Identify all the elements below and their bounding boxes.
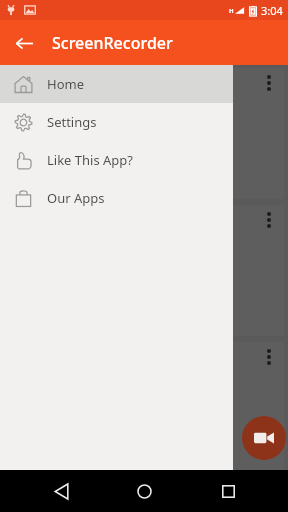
staticText: Settings — [47, 113, 97, 131]
button[interactable]: Home — [0, 65, 233, 103]
staticText: H — [229, 7, 234, 15]
staticText: Like This App? — [47, 151, 133, 169]
button[interactable]: Our Apps — [0, 179, 233, 217]
button[interactable]: Like This App? — [0, 141, 233, 179]
button[interactable]: Back — [6, 25, 42, 61]
button[interactable]: More options — [256, 207, 282, 233]
button[interactable]: 2018-09-2 — [6, 68, 284, 199]
staticText: 3:04 — [261, 3, 283, 18]
button[interactable]: 2018-09-2 — [6, 205, 284, 336]
staticText: 2018-09-2 — [16, 77, 77, 95]
button[interactable]: More options — [256, 70, 282, 96]
button[interactable]: 2018-09-2 — [6, 342, 284, 470]
staticText: Home — [47, 75, 84, 93]
button[interactable]: More options — [256, 344, 282, 370]
button[interactable]: Home — [121, 470, 167, 512]
staticText: ScreenRecorder — [52, 32, 173, 54]
button[interactable]: Back — [38, 470, 84, 512]
button[interactable]: Recent apps — [205, 470, 251, 512]
button[interactable]: Settings — [0, 103, 233, 141]
button[interactable]: Record video — [242, 416, 286, 460]
staticText: Our Apps — [47, 189, 105, 207]
